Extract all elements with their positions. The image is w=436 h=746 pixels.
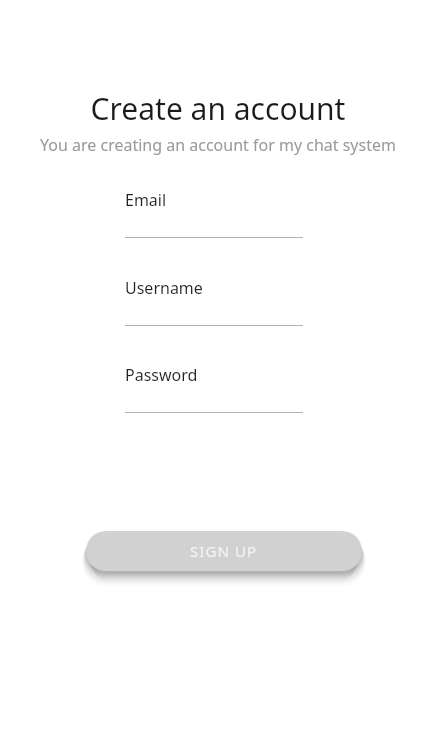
button[interactable]: Sign up xyxy=(86,531,362,571)
button[interactable]: Username xyxy=(125,277,303,329)
button[interactable]: Password xyxy=(125,364,303,416)
staticText: Create an account xyxy=(0,88,436,129)
button[interactable]: Email xyxy=(125,189,303,241)
staticText: Password xyxy=(125,364,198,386)
staticText: Email xyxy=(125,189,167,211)
staticText: You are creating an account for my chat … xyxy=(0,134,436,156)
staticText: Username xyxy=(125,277,203,299)
staticText: SIGN UP xyxy=(190,541,258,561)
